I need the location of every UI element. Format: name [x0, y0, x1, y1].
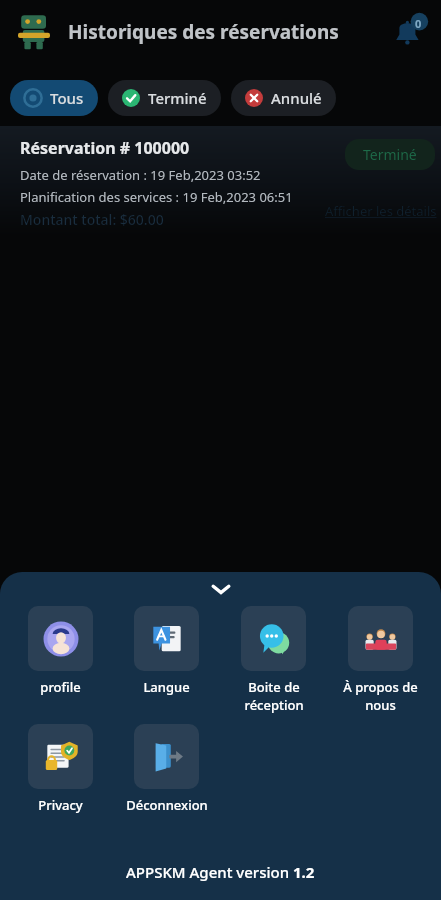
staticText: Privacy — [38, 796, 83, 814]
staticText: Tous — [50, 88, 84, 108]
button[interactable]: Terminé — [345, 139, 435, 170]
button[interactable]: Terminé — [108, 80, 221, 116]
button[interactable]: Afficher les détails — [325, 202, 437, 220]
button[interactable]: profile — [14, 606, 106, 696]
staticText: Déconnexion — [126, 796, 208, 814]
button[interactable]: À propos de nous — [334, 606, 427, 714]
staticText: Afficher les détails — [325, 202, 437, 220]
staticText: Boite de réception — [244, 678, 304, 714]
staticText: Planification des services : 19 Feb,2023… — [20, 188, 293, 206]
button[interactable]: Tous — [10, 80, 98, 116]
staticText: Langue — [143, 678, 190, 696]
staticText: À propos de nous — [343, 678, 418, 714]
staticText: Terminé — [148, 88, 207, 108]
button[interactable]: Notifications — [387, 10, 431, 54]
staticText: Réservation # 100000 — [20, 137, 190, 159]
staticText: profile — [40, 678, 81, 696]
staticText: Annulé — [271, 88, 322, 108]
staticText: APPSKM Agent version — [126, 862, 293, 882]
staticText: Historiques des réservations — [68, 19, 339, 45]
button[interactable]: Langue — [120, 606, 213, 696]
button[interactable]: Réservation # 100000 — [0, 126, 441, 236]
button[interactable]: Boite de réception — [227, 606, 320, 714]
staticText: 0 — [415, 16, 422, 31]
button[interactable]: Annulé — [231, 80, 336, 116]
staticText: Terminé — [363, 145, 417, 164]
staticText: 1.2 — [293, 862, 315, 882]
staticText: Montant total: $60.00 — [20, 210, 164, 229]
staticText: Date de réservation : 19 Feb,2023 03:52 — [20, 166, 261, 184]
button[interactable]: Collapse — [0, 572, 441, 606]
button[interactable]: Privacy — [14, 724, 106, 814]
button[interactable]: Déconnexion — [120, 724, 213, 814]
